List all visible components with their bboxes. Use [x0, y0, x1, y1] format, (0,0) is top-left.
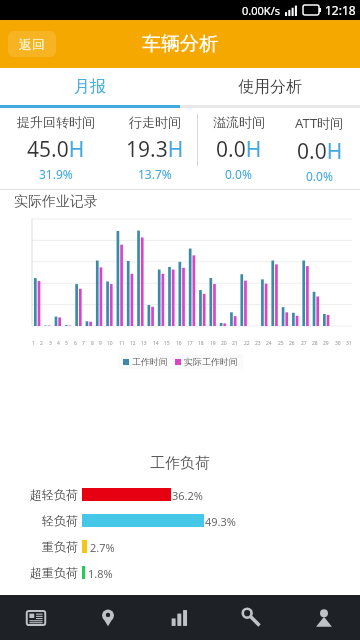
staticText: 13.7% [138, 166, 172, 182]
staticText: 6 [74, 340, 77, 347]
staticText: 月报 [74, 77, 106, 97]
staticText: 18 [198, 340, 204, 347]
staticText: 1 [32, 340, 35, 347]
staticText: 26 [289, 340, 295, 347]
staticText: 工作时间 [132, 356, 168, 367]
staticText: 28 [312, 340, 318, 347]
button[interactable]: 溢流时间 [198, 114, 279, 182]
staticText: 31.9% [39, 166, 73, 182]
staticText: 溢流时间 [213, 114, 265, 130]
staticText: 2.7% [90, 540, 115, 553]
staticText: 49.3% [205, 514, 236, 527]
staticText: 25 [278, 340, 284, 347]
staticText: 11 [119, 340, 125, 347]
staticText: 重负荷 [42, 539, 78, 554]
button[interactable]: 超轻负荷 [0, 481, 348, 507]
staticText: 0.0% [306, 168, 333, 184]
staticText: 13 [141, 340, 147, 347]
staticText: 轻负荷 [42, 513, 78, 528]
button[interactable]: 轻负荷 [0, 507, 348, 533]
staticText: 0.0% [225, 166, 252, 182]
staticText: 30 [335, 340, 341, 347]
staticText: 实际作业记录 [14, 193, 98, 211]
staticText: 20 [221, 340, 227, 347]
button[interactable]: 行走时间 [112, 114, 197, 182]
button[interactable]: 使用分析 [180, 68, 360, 105]
button[interactable]: News [0, 595, 72, 640]
staticText: 0.00K/s [242, 3, 280, 18]
staticText: 24 [266, 340, 272, 347]
button[interactable]: ATT时间 [279, 114, 360, 184]
staticText: 超重负荷 [30, 565, 78, 580]
button[interactable]: 超重负荷 [0, 559, 348, 585]
staticText: 行走时间 [129, 114, 181, 130]
staticText: 超轻负荷 [30, 487, 78, 502]
staticText: 10 [107, 340, 113, 347]
staticText: 17 [187, 340, 193, 347]
staticText: 31 [346, 340, 352, 347]
button[interactable]: Location [72, 595, 144, 640]
staticText: 15 [164, 340, 170, 347]
staticText: 14 [153, 340, 159, 347]
button[interactable]: Statistics [144, 595, 216, 640]
staticText: 19 [210, 340, 216, 347]
staticText: 5 [65, 340, 68, 347]
staticText: 16 [176, 340, 182, 347]
staticText: 23 [255, 340, 261, 347]
staticText: 使用分析 [238, 77, 302, 97]
staticText: 22 [244, 340, 250, 347]
button[interactable]: Tools [216, 595, 288, 640]
staticText: 27 [301, 340, 307, 347]
staticText: 0.0H [297, 137, 343, 166]
staticText: 7 [82, 340, 85, 347]
staticText: 4 [57, 340, 60, 347]
staticText: 36.2% [172, 488, 203, 501]
staticText: 12 [130, 340, 136, 347]
staticText: 返回 [19, 36, 45, 52]
staticText: 1.8% [88, 566, 113, 579]
staticText: 29 [323, 340, 329, 347]
staticText: 8 [91, 340, 94, 347]
staticText: 21 [232, 340, 238, 347]
staticText: 提升回转时间 [17, 114, 95, 130]
button[interactable]: 提升回转时间 [0, 114, 112, 182]
staticText: 2 [40, 340, 43, 347]
button[interactable]: 月报 [0, 68, 180, 105]
staticText: 12:18 [325, 2, 356, 18]
staticText: 工作负荷 [150, 454, 210, 473]
staticText: 3 [49, 340, 52, 347]
staticText: 45.0H [27, 135, 85, 164]
staticText: 19.3H [126, 135, 184, 164]
button[interactable]: 返回 [8, 31, 56, 57]
staticText: 实际工作时间 [184, 356, 238, 367]
staticText: 0.0H [216, 135, 262, 164]
button[interactable]: 重负荷 [0, 533, 348, 559]
staticText: 9 [99, 340, 102, 347]
button[interactable]: Profile [288, 595, 360, 640]
staticText: ATT时间 [295, 114, 344, 132]
staticText: 车辆分析 [142, 32, 218, 56]
